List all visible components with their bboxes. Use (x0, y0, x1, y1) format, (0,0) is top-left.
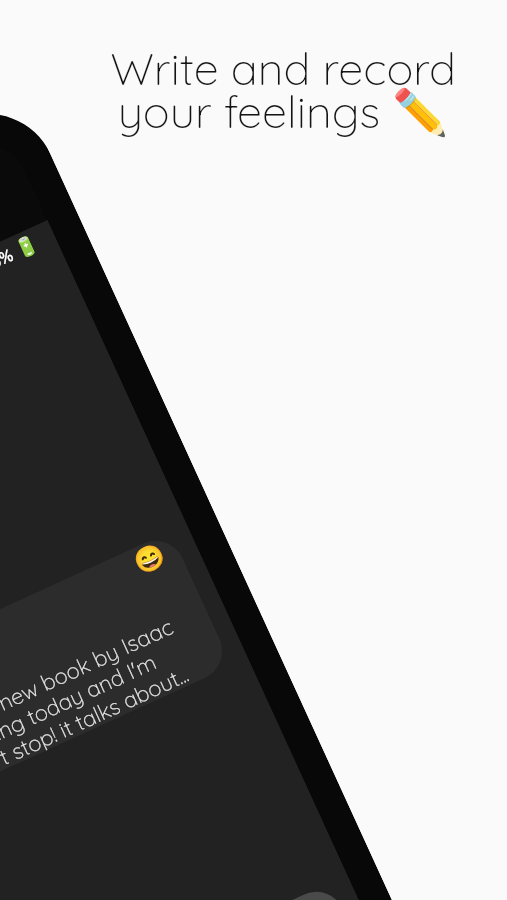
staticText: 85% (0, 244, 17, 276)
staticText: 🔋 (11, 231, 42, 261)
staticText: i read new book by Isaac reading today a… (0, 612, 197, 786)
staticText: Write and record your feelings ✏️ (110, 40, 456, 140)
button[interactable]: 😄 (0, 531, 232, 805)
staticText: 😄 (129, 540, 169, 578)
button[interactable] (27, 882, 382, 900)
